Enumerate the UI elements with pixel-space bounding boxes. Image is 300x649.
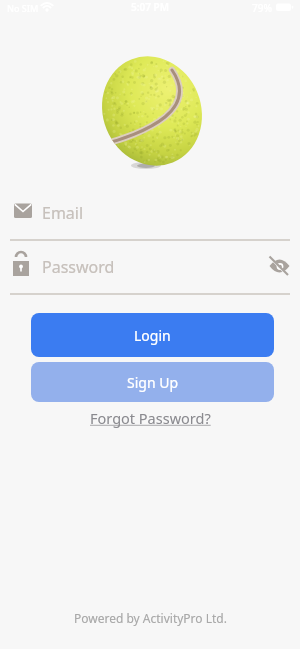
- staticText: 5:07 PM: [131, 0, 169, 14]
- button[interactable]: Login: [31, 313, 274, 357]
- staticText: Email: [42, 202, 84, 224]
- button[interactable]: Sign Up: [31, 362, 274, 402]
- staticText: Powered by ActivityPro Ltd.: [74, 610, 227, 626]
- button[interactable]: [266, 252, 294, 280]
- staticText: Sign Up: [127, 373, 179, 392]
- staticText: Password: [42, 256, 115, 278]
- staticText: No SIM: [7, 2, 39, 14]
- button[interactable]: Email: [10, 191, 290, 235]
- staticText: Forgot Password?: [90, 408, 211, 428]
- staticText: 79%: [252, 1, 272, 15]
- button[interactable]: Password: [10, 245, 290, 289]
- staticText: Login: [134, 326, 171, 345]
- button[interactable]: Forgot Password?: [90, 408, 211, 428]
